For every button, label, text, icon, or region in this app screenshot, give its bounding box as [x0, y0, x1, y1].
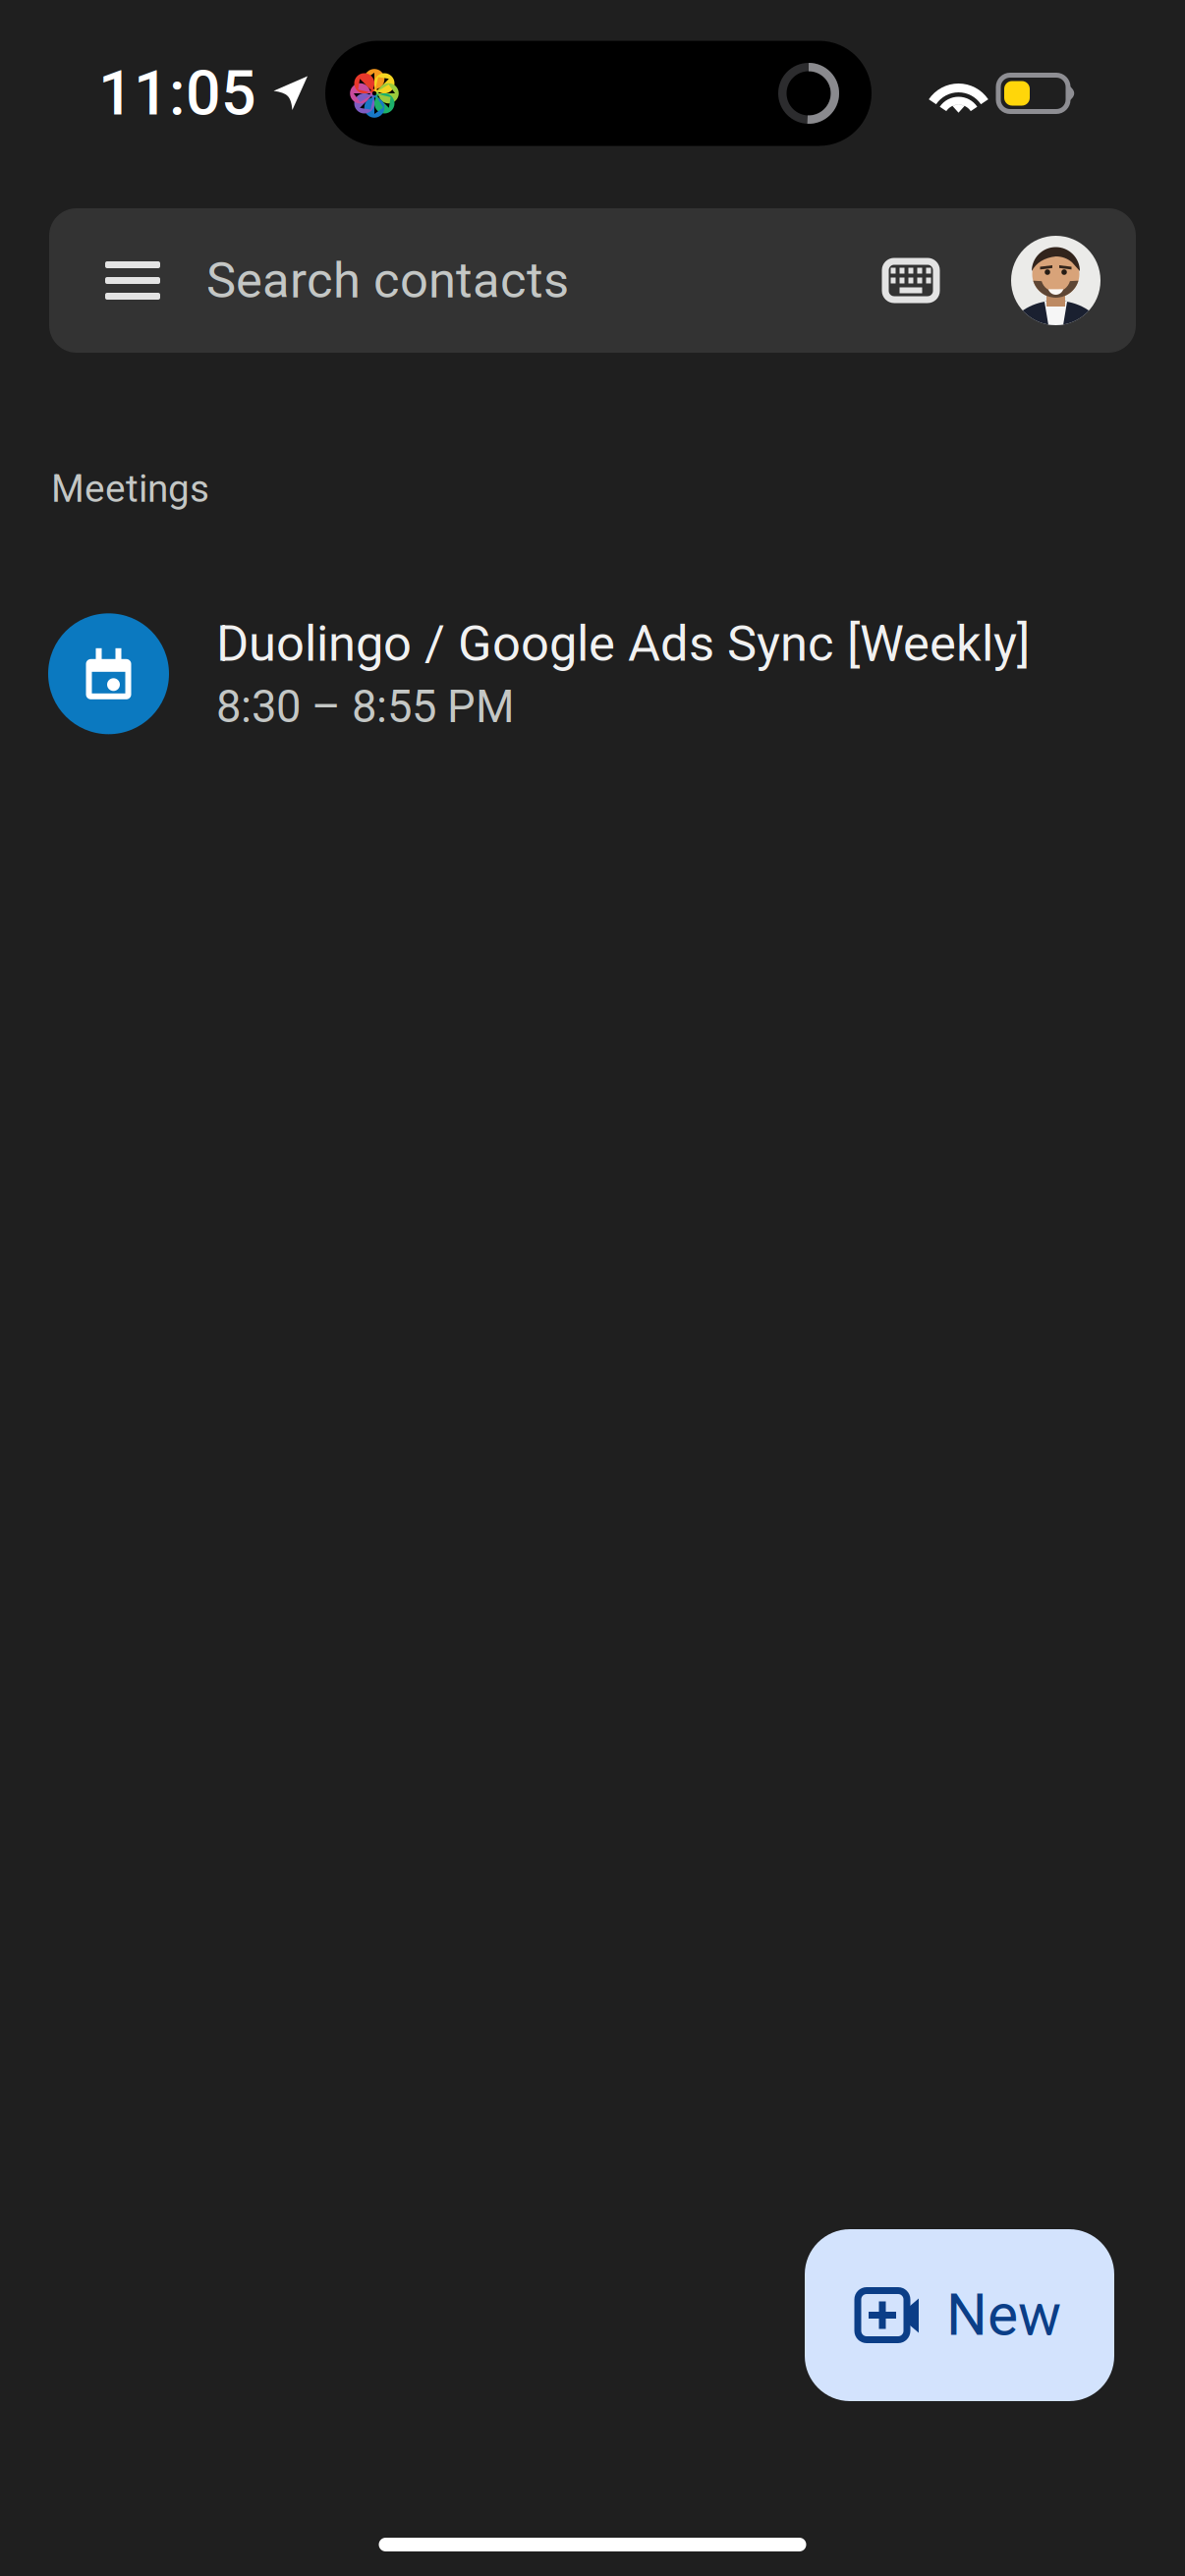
staticText: Meetings [51, 467, 209, 511]
button[interactable]: Main menu [49, 208, 216, 353]
button[interactable]: Duolingo / Google Ads Sync [Weekly] [0, 613, 1185, 734]
staticText: Search contacts [206, 251, 569, 310]
staticText: 8:30 – 8:55 PM [216, 681, 515, 733]
button[interactable]: New [805, 2229, 1114, 2401]
button[interactable]: Account [993, 208, 1118, 353]
staticText: New [946, 2281, 1061, 2349]
staticText: Duolingo / Google Ads Sync [Weekly] [216, 615, 1030, 673]
button[interactable]: Keypad [860, 208, 962, 353]
staticText: 11:05 [98, 57, 256, 129]
